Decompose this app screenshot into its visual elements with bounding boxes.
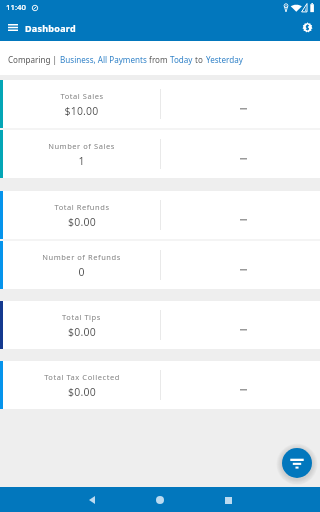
- staticText: Dashboard: [25, 22, 76, 34]
- button[interactable]: Business, All Payments: [60, 54, 147, 65]
- staticText: Comparing |: [8, 54, 60, 65]
- button[interactable]: Back: [80, 488, 104, 512]
- staticText: Total Sales: [60, 91, 104, 101]
- button[interactable]: Recents: [216, 488, 240, 512]
- staticText: Total Tips: [62, 312, 101, 322]
- button[interactable]: Total Refunds: [0, 191, 320, 239]
- staticText: 11:40: [6, 2, 26, 13]
- staticText: $0.00: [68, 215, 96, 229]
- staticText: Total Tax Collected: [44, 372, 120, 382]
- button[interactable]: Today: [170, 54, 193, 65]
- button[interactable]: Number of Refunds: [0, 241, 320, 289]
- staticText: Number of Refunds: [42, 252, 121, 262]
- button[interactable]: Filter: [282, 448, 312, 478]
- staticText: Number of Sales: [48, 141, 115, 151]
- staticText: $0.00: [68, 325, 96, 339]
- button[interactable]: Menu: [1, 14, 25, 41]
- button[interactable]: Total Tax Collected: [0, 361, 320, 409]
- staticText: from: [147, 54, 170, 65]
- staticText: $0.00: [68, 385, 96, 399]
- button[interactable]: Home: [148, 488, 172, 512]
- staticText: Total Refunds: [54, 202, 110, 212]
- button[interactable]: Total Tips: [0, 301, 320, 349]
- button[interactable]: Settings: [297, 17, 317, 37]
- staticText: $10.00: [64, 104, 99, 118]
- staticText: 1: [78, 154, 85, 168]
- button[interactable]: Number of Sales: [0, 130, 320, 178]
- button[interactable]: Yesterday: [206, 54, 243, 65]
- staticText: to: [193, 54, 206, 65]
- staticText: 0: [78, 265, 85, 279]
- button[interactable]: Total Sales: [0, 80, 320, 128]
